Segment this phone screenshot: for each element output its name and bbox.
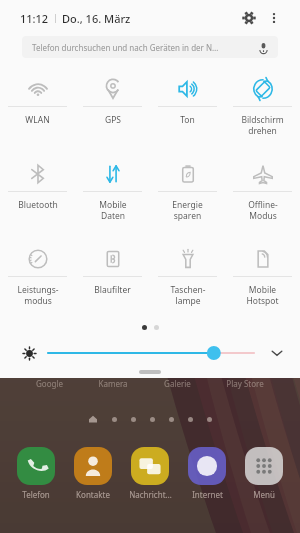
staticText: Menü	[253, 489, 275, 500]
button[interactable]: Mobile Hotspot	[225, 236, 300, 321]
staticText: Offline- Modus	[248, 199, 278, 221]
button[interactable]: Settings	[236, 5, 262, 31]
button[interactable]: Taschen- lampe	[150, 236, 225, 321]
button[interactable]	[48, 343, 254, 363]
button[interactable]: Telefon durchsuchen und nach Geräten in …	[22, 36, 278, 58]
button[interactable]: Menü	[238, 447, 290, 500]
staticText: Leistungs- modus	[17, 284, 59, 306]
staticText: Mobile Daten	[99, 199, 127, 221]
button[interactable]: Brightness	[20, 344, 38, 362]
staticText: Energie sparen	[172, 199, 203, 221]
staticText: Mobile Hotspot	[246, 284, 279, 306]
button[interactable]: Blaufilter	[75, 236, 150, 321]
staticText: Google	[36, 378, 63, 389]
button[interactable]: Kontakte	[67, 447, 119, 500]
button[interactable]: Telefon	[10, 447, 62, 500]
button[interactable]: Bildschirm drehen	[225, 66, 300, 151]
staticText: Blaufilter	[94, 284, 131, 296]
button[interactable]: More options	[262, 6, 286, 30]
staticText: Galerie	[164, 378, 191, 389]
staticText: Taschen- lampe	[170, 284, 206, 306]
staticText: Bildschirm drehen	[241, 114, 284, 136]
staticText: Kamera	[98, 378, 128, 389]
button[interactable]: Ton	[150, 66, 225, 151]
staticText: 11:12	[20, 11, 49, 26]
staticText: Do., 16. März	[62, 11, 131, 26]
button[interactable]	[139, 370, 161, 374]
button[interactable]: Energie sparen	[150, 151, 225, 236]
staticText: Nachricht…	[129, 489, 172, 500]
staticText: Telefon durchsuchen und nach Geräten in …	[32, 42, 219, 53]
button[interactable]: GPS	[75, 66, 150, 151]
button[interactable]: WLAN	[0, 66, 75, 151]
staticText: Bluetooth	[18, 199, 58, 211]
staticText: WLAN	[25, 114, 50, 126]
button[interactable]: Expand	[266, 342, 288, 364]
button[interactable]: Offline- Modus	[225, 151, 300, 236]
staticText: Kontakte	[76, 489, 110, 500]
button[interactable]: Mobile Daten	[75, 151, 150, 236]
button[interactable]: Leistungs- modus	[0, 236, 75, 321]
staticText: Telefon	[22, 489, 50, 500]
button[interactable]: Internet	[181, 447, 233, 500]
button[interactable]: Bluetooth	[0, 151, 75, 236]
staticText: Ton	[180, 114, 195, 126]
staticText: Play Store	[226, 378, 264, 389]
staticText: GPS	[105, 114, 121, 126]
staticText: Internet	[192, 489, 223, 500]
button[interactable]: Nachricht…	[124, 447, 176, 500]
